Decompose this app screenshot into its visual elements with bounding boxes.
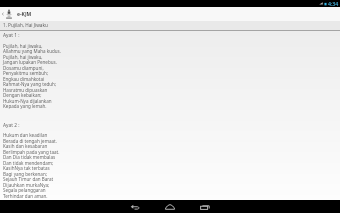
staticText: Terhindar dan aman. bbox=[3, 193, 48, 199]
staticText: Bagi yang berkenan; bbox=[3, 171, 47, 177]
staticText: Dan tidak mendendam; bbox=[3, 160, 54, 166]
staticText: Segala pelanggaran bbox=[3, 187, 46, 193]
staticText: 4:34 bbox=[328, 0, 339, 7]
staticText: Jangan lupakan Penebus. bbox=[3, 59, 57, 65]
staticText: Hukum-Nya dijalankan bbox=[3, 98, 52, 104]
staticText: Ayat 1 : bbox=[3, 32, 20, 39]
staticText: Kasih dan kesabaran bbox=[3, 143, 48, 149]
staticText: Dosamu diampuni, bbox=[3, 65, 44, 71]
staticText: Dan Dia tidak membalas bbox=[3, 154, 56, 160]
staticText: Sejauh Timur dan Barat bbox=[3, 176, 54, 182]
staticText: Dengan kebaikan; bbox=[3, 92, 42, 98]
staticText: Berada di tengah jemaat. bbox=[3, 138, 57, 144]
staticText: e-KJM bbox=[17, 11, 32, 18]
staticText: Pujilah, hai jiwaku, bbox=[3, 43, 43, 49]
staticText: Hukum dan keadilan bbox=[3, 132, 48, 138]
button[interactable]: Back bbox=[129, 201, 141, 213]
button[interactable]: Home bbox=[164, 201, 176, 213]
staticText: Rahmat-Nya yang teduh; bbox=[3, 81, 57, 87]
button[interactable]: Back bbox=[0, 7, 5, 21]
staticText: Allahmu yang Maha kudus. bbox=[3, 48, 61, 54]
staticText: Ayat 2 : bbox=[3, 122, 20, 129]
staticText: Pujilah, hai jiwaku, bbox=[3, 54, 43, 60]
staticText: Hasratmu dipuaskan bbox=[3, 87, 48, 93]
staticText: Penyakitmu sembuh; bbox=[3, 70, 49, 76]
button[interactable]: 1. Pujilah, Hai Jiwaku bbox=[0, 21, 340, 30]
staticText: KasihNya tak terbatas bbox=[3, 165, 50, 171]
staticText: 1. Pujilah, Hai Jiwaku bbox=[3, 22, 48, 28]
staticText: Berlimpah pada yang taat. bbox=[3, 149, 60, 155]
staticText: Dijauhkan murkaNya; bbox=[3, 182, 50, 188]
staticText: Engkau dimahkotai bbox=[3, 76, 45, 82]
staticText: Kepada yang lemah. bbox=[3, 103, 47, 109]
button[interactable]: Recent apps bbox=[199, 201, 211, 213]
